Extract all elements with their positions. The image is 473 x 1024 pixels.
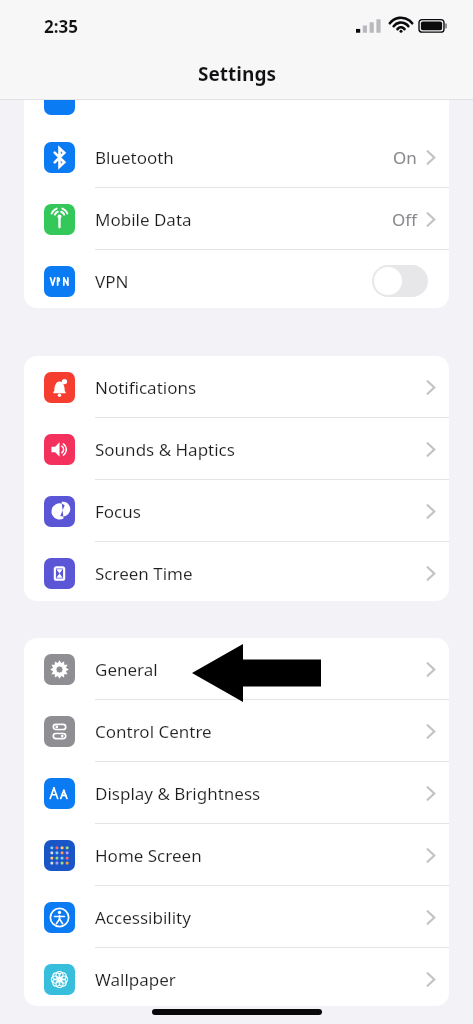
button[interactable]: Bluetooth: [24, 126, 449, 188]
button[interactable]: Wallpaper: [24, 948, 449, 1010]
staticText: Notifications: [95, 376, 197, 399]
staticText: Home Screen: [95, 844, 202, 867]
button[interactable]: Control Centre: [24, 700, 449, 762]
staticText: On: [393, 146, 417, 169]
staticText: Mobile Data: [95, 208, 192, 231]
button[interactable]: Accessibility: [24, 886, 449, 948]
staticText: General: [95, 658, 158, 681]
staticText: Wallpaper: [95, 968, 176, 991]
staticText: VPN: [95, 270, 129, 293]
button[interactable]: Mobile Data: [24, 188, 449, 250]
button[interactable]: Home Screen: [24, 824, 449, 886]
button[interactable]: VPN: [24, 250, 449, 312]
staticText: Settings: [198, 61, 276, 87]
button[interactable]: General: [24, 638, 449, 700]
button[interactable]: Screen Time: [24, 542, 449, 604]
staticText: Bluetooth: [95, 146, 174, 169]
staticText: Off: [392, 208, 417, 231]
button[interactable]: VPN toggle, off: [372, 265, 428, 297]
staticText: Control Centre: [95, 720, 212, 743]
button[interactable]: Notifications: [24, 356, 449, 418]
staticText: Accessibility: [95, 906, 191, 929]
staticText: Sounds & Haptics: [95, 438, 235, 461]
button[interactable]: Focus: [24, 480, 449, 542]
button[interactable]: Display & Brightness: [24, 762, 449, 824]
button[interactable]: Sounds & Haptics: [24, 418, 449, 480]
staticText: Screen Time: [95, 562, 193, 585]
staticText: Display & Brightness: [95, 782, 261, 805]
staticText: Focus: [95, 500, 141, 523]
staticText: 2:35: [44, 15, 78, 38]
